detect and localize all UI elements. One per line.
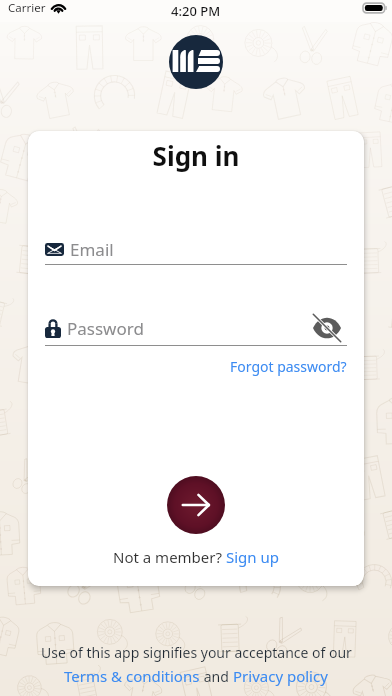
button[interactable]: Show password (313, 313, 347, 343)
staticText: Sign in (45, 138, 347, 173)
button[interactable]: Forgot password? (230, 357, 347, 376)
staticText: Password (67, 317, 144, 340)
staticText: Email (70, 238, 114, 261)
button[interactable]: Password (45, 313, 347, 343)
button[interactable]: Email (45, 238, 347, 261)
button[interactable]: Sign up (226, 547, 279, 567)
staticText: 4:20 PM (171, 2, 221, 20)
button[interactable]: Sign in (167, 476, 225, 534)
button[interactable]: Privacy policy (233, 666, 328, 686)
other: App logo (169, 35, 223, 89)
staticText: Use of this app signifies your acceptanc… (41, 643, 352, 662)
staticText: Carrier (8, 0, 46, 16)
staticText: Not a member? (113, 547, 226, 567)
button[interactable]: Terms & conditions (64, 666, 200, 686)
staticText: and (200, 667, 233, 686)
